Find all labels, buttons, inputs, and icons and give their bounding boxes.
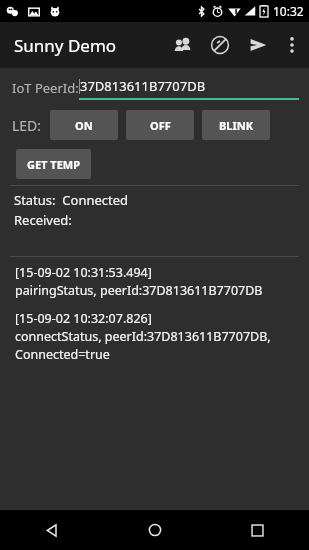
staticText: Connected=true <box>15 346 110 363</box>
button[interactable]: Back <box>0 510 103 550</box>
button[interactable]: 37D813611B7707DB <box>79 77 299 100</box>
staticText: [15-09-02 10:31:53.494] <box>15 264 152 281</box>
button[interactable]: Home <box>103 510 206 550</box>
button[interactable]: Peers <box>163 26 201 64</box>
staticText: Received: <box>14 211 72 229</box>
staticText: OFF <box>150 118 171 133</box>
button[interactable]: ON <box>50 110 118 140</box>
button[interactable]: Disconnect <box>201 26 239 64</box>
button[interactable]: Recent apps <box>206 510 309 550</box>
button[interactable]: OFF <box>126 110 194 140</box>
staticText: pairingStatus, peerId:37D813611B7707DB <box>15 282 263 299</box>
staticText: Status: Connected <box>14 191 129 209</box>
button[interactable]: BLINK <box>202 110 270 140</box>
button[interactable]: Send <box>239 26 277 64</box>
staticText: 37D813611B7707DB <box>80 77 206 95</box>
staticText: ON <box>75 118 93 133</box>
staticText: 10:32 <box>273 3 304 19</box>
staticText: GET TEMP <box>27 157 81 172</box>
staticText: IoT PeerId: <box>12 79 79 97</box>
staticText: LED: <box>12 116 42 135</box>
staticText: Sunny Demo <box>14 34 117 57</box>
staticText: [15-09-02 10:32:07.826] <box>15 310 152 327</box>
staticText: BLINK <box>219 118 253 133</box>
button[interactable]: More options <box>277 30 307 60</box>
staticText: connectStatus, peerId:37D813611B7707DB, <box>15 328 271 345</box>
button[interactable]: GET TEMP <box>16 149 91 179</box>
